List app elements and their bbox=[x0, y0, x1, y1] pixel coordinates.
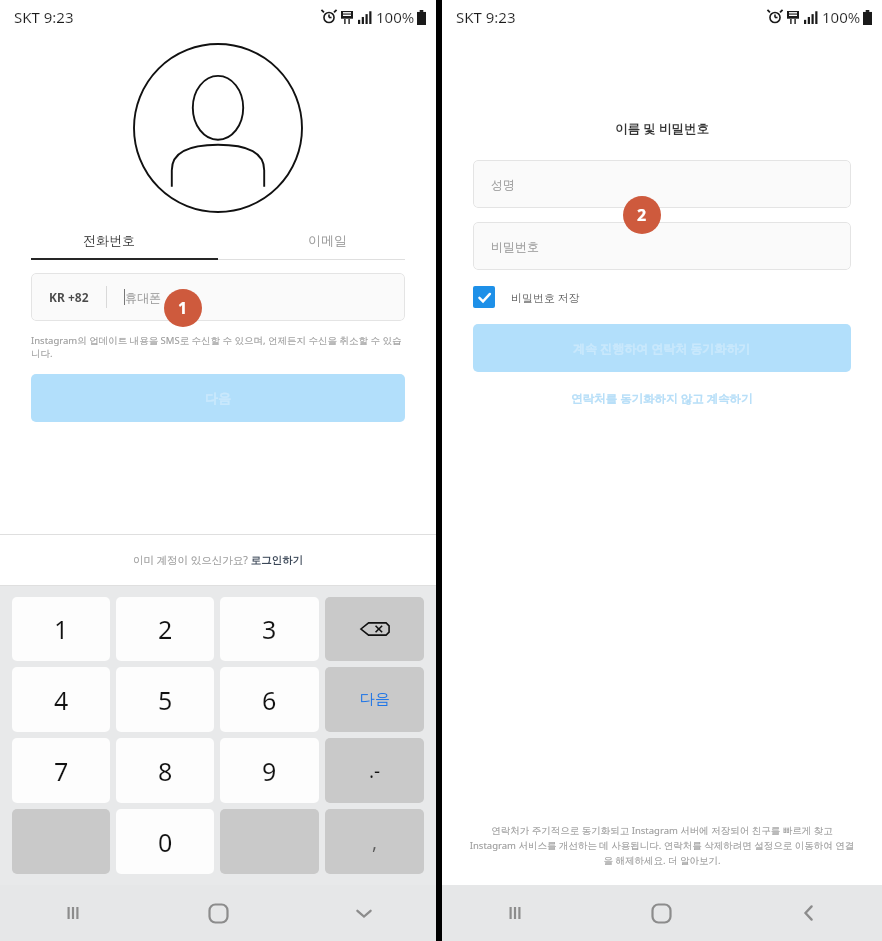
staticText: 5 bbox=[158, 683, 173, 717]
button[interactable]: 7 bbox=[12, 738, 110, 803]
button[interactable]: .- bbox=[325, 738, 424, 803]
staticText: 연락처를 동기화하지 않고 계속하기 bbox=[571, 391, 753, 407]
button[interactable]: 2 bbox=[116, 597, 214, 661]
staticText: .- bbox=[369, 758, 381, 784]
staticText: 6 bbox=[262, 683, 277, 717]
button[interactable]: 비밀번호 저장 bbox=[473, 286, 851, 308]
button[interactable]: Recents bbox=[442, 885, 588, 941]
button[interactable]: Home bbox=[146, 885, 291, 941]
staticText: 이메일 bbox=[308, 232, 347, 248]
button[interactable]: 비밀번호 bbox=[473, 222, 851, 270]
staticText: 8 bbox=[158, 754, 173, 788]
staticText: 100% bbox=[376, 7, 415, 27]
staticText: 0 bbox=[158, 825, 173, 859]
staticText: SKT 9:23 bbox=[14, 7, 74, 27]
staticText: 이미 계정이 있으신가요? 로그인하기 bbox=[0, 553, 436, 567]
staticText: 7 bbox=[54, 754, 69, 788]
staticText: 2 bbox=[637, 204, 647, 226]
button[interactable]: KR +82 bbox=[31, 273, 405, 321]
staticText: SKT 9:23 bbox=[456, 7, 516, 27]
button[interactable]: 0 bbox=[116, 809, 214, 874]
button[interactable]: 4 bbox=[12, 667, 110, 732]
staticText: KR +82 bbox=[49, 289, 89, 305]
staticText: 비밀번호 저장 bbox=[511, 290, 580, 305]
staticText: 다음 bbox=[360, 690, 390, 709]
staticText: 1 bbox=[54, 612, 69, 646]
staticText: 다음 bbox=[205, 390, 231, 406]
button[interactable]: 3 bbox=[220, 597, 319, 661]
button[interactable]: 다음 bbox=[31, 374, 405, 422]
button[interactable]: Hide keyboard bbox=[291, 885, 436, 941]
staticText: 4 bbox=[54, 683, 69, 717]
button[interactable]: 5 bbox=[116, 667, 214, 732]
staticText: Instagram의 업데이트 내용을 SMS로 수신할 수 있으며, 언제든지… bbox=[31, 334, 405, 360]
staticText: 9 bbox=[262, 754, 277, 788]
button[interactable]: , bbox=[325, 809, 424, 874]
staticText: 성명 bbox=[491, 177, 515, 192]
staticText: 100% bbox=[822, 7, 861, 27]
button[interactable]: Recents bbox=[0, 885, 146, 941]
staticText: 이름 및 비밀번호 bbox=[442, 120, 882, 137]
button[interactable]: 전화번호 bbox=[0, 222, 218, 258]
button[interactable]: Next bbox=[325, 667, 424, 732]
button[interactable]: 1 bbox=[12, 597, 110, 661]
button[interactable]: Back bbox=[735, 885, 882, 941]
button[interactable]: 6 bbox=[220, 667, 319, 732]
staticText: 3 bbox=[262, 612, 277, 646]
button[interactable]: 연락처를 동기화하지 않고 계속하기 bbox=[442, 384, 882, 414]
staticText: 비밀번호 bbox=[491, 239, 539, 254]
button[interactable]: 계속 진행하여 연락처 동기화하기 bbox=[473, 324, 851, 372]
staticText: 연락처가 주기적으로 동기화되고 Instagram 서버에 저장되어 친구를 … bbox=[467, 824, 857, 867]
button[interactable]: Home bbox=[588, 885, 735, 941]
staticText: 휴대폰 bbox=[125, 290, 161, 305]
button[interactable]: Backspace bbox=[325, 597, 424, 661]
button[interactable]: 이미 계정이 있으신가요? 로그인하기 bbox=[0, 535, 436, 585]
staticText: 2 bbox=[158, 612, 173, 646]
button[interactable]: 9 bbox=[220, 738, 319, 803]
staticText: 1 bbox=[178, 297, 188, 319]
button[interactable]: 8 bbox=[116, 738, 214, 803]
staticText: , bbox=[372, 829, 378, 855]
staticText: 전화번호 bbox=[83, 232, 135, 248]
button[interactable]: 성명 bbox=[473, 160, 851, 208]
staticText: 계속 진행하여 연락처 동기화하기 bbox=[573, 340, 751, 356]
button[interactable]: 이메일 bbox=[218, 222, 436, 258]
